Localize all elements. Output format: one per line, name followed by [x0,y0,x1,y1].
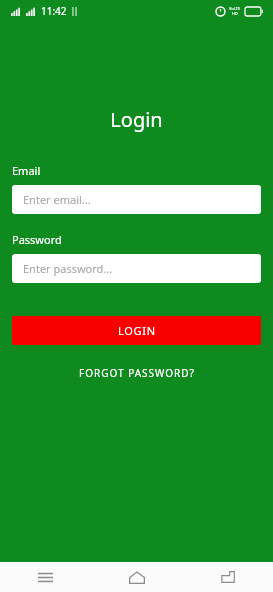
button[interactable]: Home [91,562,182,592]
staticText: Email [12,163,41,178]
staticText: VoLTE [229,6,241,11]
staticText: Enter email... [23,192,91,207]
staticText: Login [0,106,273,133]
button[interactable]: LOGIN [12,316,261,345]
button[interactable]: FORGOT PASSWORD? [0,366,273,380]
staticText: Password [12,232,62,247]
button[interactable]: Recent apps [0,562,91,592]
button[interactable]: Back [182,562,273,592]
button[interactable]: Enter email... [12,185,261,214]
staticText: FORGOT PASSWORD? [79,366,195,380]
staticText: 11:42 [41,4,67,18]
staticText: HD [232,11,238,16]
button[interactable]: Enter password... [12,254,261,283]
staticText: Enter password... [23,261,113,276]
staticText: LOGIN [118,323,156,338]
